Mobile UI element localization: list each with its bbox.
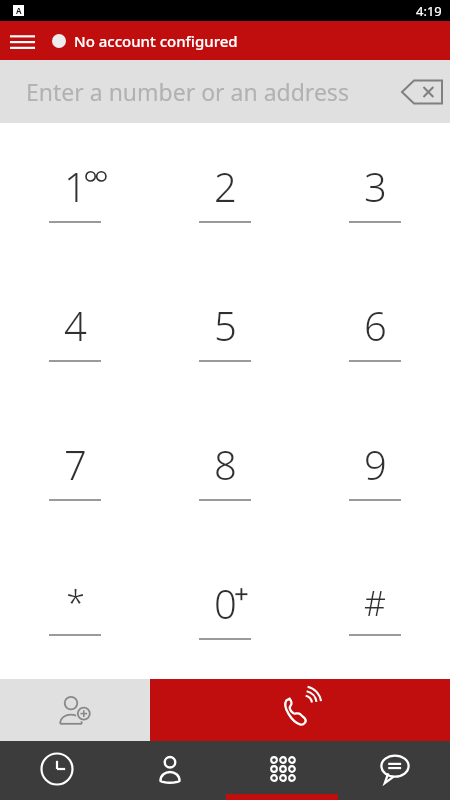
button[interactable]: 4 bbox=[0, 262, 150, 401]
button[interactable]: 2 bbox=[150, 123, 300, 262]
staticText: 0 bbox=[214, 576, 237, 630]
staticText: 2 bbox=[214, 159, 237, 213]
button[interactable]: 9 bbox=[300, 401, 450, 540]
staticText: 1 bbox=[64, 159, 87, 213]
staticText: # bbox=[364, 580, 386, 626]
button[interactable]: # bbox=[300, 540, 450, 679]
button[interactable]: Messages bbox=[339, 741, 450, 800]
button[interactable]: Call bbox=[150, 679, 450, 741]
staticText: Enter a number or an address bbox=[26, 76, 349, 107]
staticText: No account configured bbox=[74, 31, 238, 51]
staticText: 5 bbox=[214, 298, 237, 352]
button[interactable]: Recent calls bbox=[0, 741, 113, 800]
button[interactable]: 8 bbox=[150, 401, 300, 540]
staticText: 8 bbox=[214, 437, 237, 491]
staticText: 9 bbox=[364, 437, 387, 491]
button[interactable]: Add contact bbox=[0, 679, 150, 741]
staticText: 4:19 bbox=[416, 2, 442, 20]
staticText: 6 bbox=[364, 298, 387, 352]
button[interactable]: Enter a number or an address bbox=[0, 60, 450, 123]
button[interactable]: 5 bbox=[150, 262, 300, 401]
staticText: A bbox=[16, 5, 22, 16]
button[interactable]: 7 bbox=[0, 401, 150, 540]
button[interactable]: Backspace bbox=[394, 64, 450, 120]
staticText: 7 bbox=[64, 437, 87, 491]
staticText: 4 bbox=[64, 298, 87, 352]
button[interactable]: Dialpad bbox=[226, 741, 339, 800]
button[interactable]: 0 bbox=[150, 540, 300, 679]
button[interactable]: 6 bbox=[300, 262, 450, 401]
staticText: 3 bbox=[364, 159, 387, 213]
staticText: * bbox=[66, 580, 85, 626]
button[interactable]: 3 bbox=[300, 123, 450, 262]
button[interactable]: Open navigation menu bbox=[0, 21, 44, 60]
button[interactable]: 1 bbox=[0, 123, 150, 262]
button[interactable]: Contacts bbox=[113, 741, 226, 800]
button[interactable]: * bbox=[0, 540, 150, 679]
